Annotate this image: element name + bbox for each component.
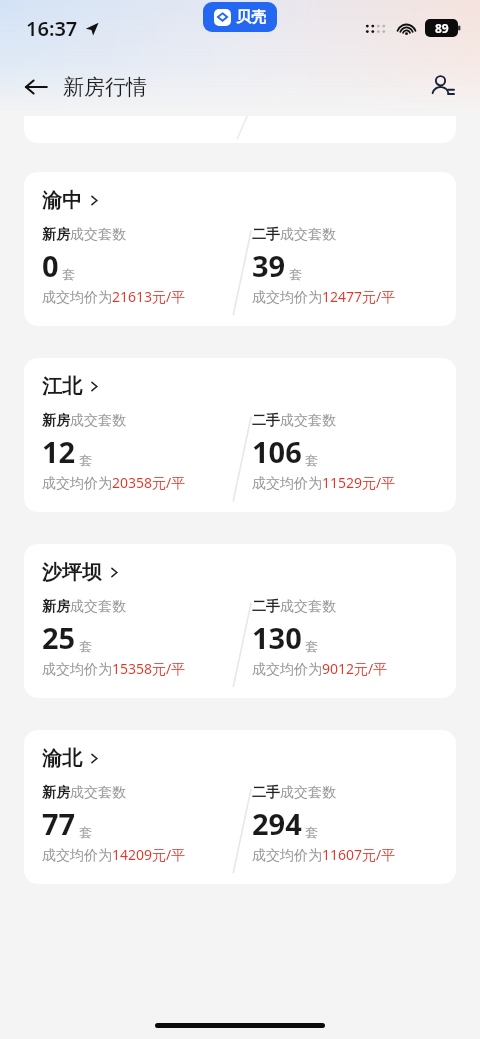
staticText: 294 (252, 804, 302, 843)
staticText: 成交均价为12477元/平 (252, 287, 396, 306)
button[interactable]: 沙坪坝 (24, 544, 456, 698)
staticText: 渝中 (42, 188, 82, 213)
staticText: 77 (42, 804, 76, 843)
staticText: 套 (79, 452, 92, 468)
button[interactable]: 渝北 (24, 730, 456, 884)
staticText: 沙坪坝 (42, 560, 102, 585)
staticText: 89 (435, 20, 449, 36)
staticText: 贝壳 (236, 8, 266, 27)
staticText: 套 (62, 266, 75, 282)
staticText: 套 (305, 824, 318, 840)
staticText: 套 (305, 638, 318, 654)
staticText: 新房行情 (63, 74, 147, 100)
button[interactable]: 渝中 (24, 172, 456, 326)
staticText: 新房成交套数 (42, 412, 126, 430)
staticText: 成交均价为14209元/平 (42, 845, 186, 864)
staticText: 成交均价为15358元/平 (42, 659, 186, 678)
staticText: 二手成交套数 (252, 412, 336, 430)
other: Back (24, 75, 48, 99)
staticText: 套 (305, 452, 318, 468)
staticText: 39 (252, 246, 286, 285)
button[interactable]: 江北 (24, 358, 456, 512)
button[interactable]: 贝壳 (203, 2, 277, 32)
staticText: 新房成交套数 (42, 226, 126, 244)
staticText: 二手成交套数 (252, 226, 336, 244)
staticText: 0 (42, 246, 59, 285)
staticText: 成交均价为9012元/平 (252, 659, 388, 678)
staticText: 江北 (42, 374, 82, 399)
staticText: 106 (252, 432, 302, 471)
staticText: 12 (42, 432, 76, 471)
staticText: 二手成交套数 (252, 784, 336, 802)
staticText: 套 (79, 638, 92, 654)
staticText: 成交均价为11607元/平 (252, 845, 396, 864)
staticText: 成交均价为21613元/平 (42, 287, 186, 306)
staticText: 130 (252, 618, 302, 657)
staticText: 成交均价为20358元/平 (42, 473, 186, 492)
staticText: 二手成交套数 (252, 598, 336, 616)
staticText: 新房成交套数 (42, 784, 126, 802)
staticText: 16:37 (26, 15, 78, 42)
staticText: 套 (79, 824, 92, 840)
staticText: 渝北 (42, 746, 82, 771)
button[interactable]: Back (18, 70, 153, 104)
staticText: 成交均价为11529元/平 (252, 473, 396, 492)
staticText: 套 (289, 266, 302, 282)
staticText: 新房成交套数 (42, 598, 126, 616)
button[interactable]: Account (424, 68, 460, 104)
staticText: 25 (42, 618, 76, 657)
